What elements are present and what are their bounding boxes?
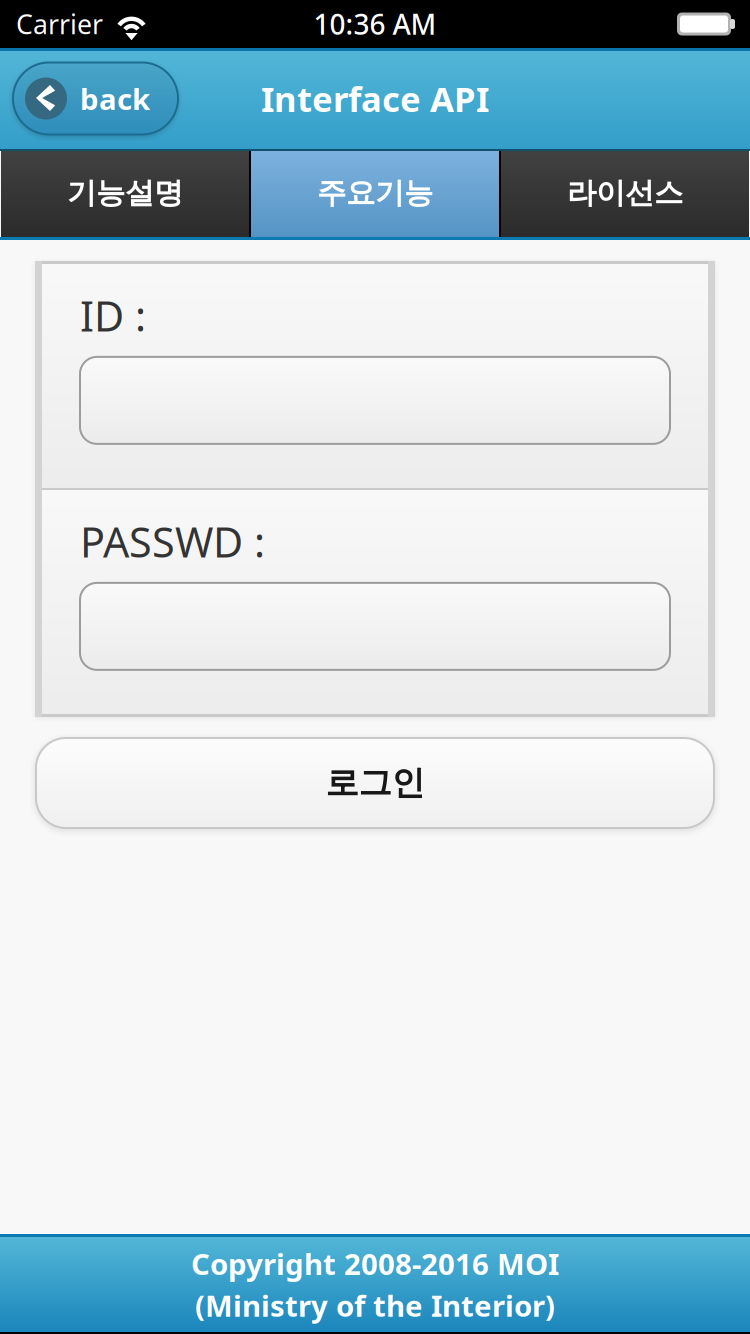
staticText: 10:36 AM: [313, 5, 436, 43]
button[interactable]: 로그인: [36, 738, 714, 828]
staticText: Interface API: [261, 75, 489, 121]
staticText: ID :: [80, 288, 146, 343]
button[interactable]: 기능설명: [1, 149, 249, 237]
button[interactable]: 주요기능: [251, 149, 499, 237]
staticText: 라이선스: [567, 175, 683, 211]
staticText: back: [80, 79, 150, 118]
staticText: 주요기능: [317, 175, 433, 211]
staticText: 로그인: [325, 762, 424, 803]
button[interactable]: 라이선스: [501, 149, 749, 237]
staticText: (Ministry of the Interior): [195, 1286, 555, 1325]
staticText: PASSWD :: [80, 514, 265, 569]
staticText: 기능설명: [67, 175, 183, 211]
button[interactable]: back: [13, 62, 178, 134]
staticText: Copyright 2008-2016 MOI: [191, 1244, 559, 1283]
staticText: Carrier: [16, 6, 103, 42]
